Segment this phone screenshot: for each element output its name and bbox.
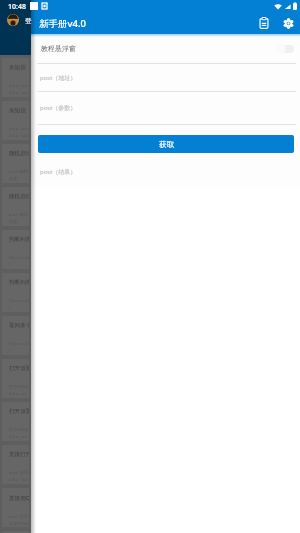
button[interactable]: 判断列表有无 <box>2 230 29 269</box>
button[interactable]: 返回多个值的 <box>2 316 29 355</box>
button[interactable]: 判断列表是否 <box>2 273 29 312</box>
button[interactable]: post（参数） <box>0 92 300 124</box>
staticText: 获取 <box>159 140 174 149</box>
staticText: 登 <box>25 17 31 25</box>
staticText: 新手册v4.0 <box>39 17 86 30</box>
button[interactable]: 直接用QQ浏览 <box>2 488 29 527</box>
button[interactable]: 发短信 <box>2 101 29 140</box>
button[interactable]: 随机启动应用 <box>2 187 29 226</box>
staticText: 判断列表有无 <box>9 236 29 243</box>
staticText: post（参数） <box>40 104 77 112</box>
staticText: 返回多个值的 <box>9 322 29 329</box>
staticText: a.w="随机启动" <box>9 212 29 218</box>
staticText: 发短信 <box>9 107 26 114</box>
staticText: 直接打开应用 <box>9 451 29 458</box>
staticText: post（结果） <box>40 168 77 176</box>
button[interactable]: 随机启动应用 <box>2 144 29 183</box>
staticText: 发短信 <box>9 64 26 71</box>
staticText: 打开设置页面 <box>9 365 29 372</box>
button[interactable]: 打开设置页面 <box>2 402 29 441</box>
staticText: a.w="随机启动" <box>9 169 29 175</box>
staticText: 10:48 <box>8 2 26 12</box>
staticText: post（地址） <box>40 74 77 82</box>
button[interactable]: 获取 <box>38 135 294 153</box>
button[interactable]: 打开设置页面 <box>2 359 29 398</box>
button[interactable]: 发短信 <box>2 58 29 97</box>
staticText: 教程悬浮窗 <box>41 44 76 53</box>
button[interactable]: Settings <box>277 12 299 34</box>
staticText: 直接用QQ浏览 <box>9 494 29 502</box>
staticText: 打开设置页面 <box>9 408 29 415</box>
staticText: 随机启动应用 <box>9 150 29 157</box>
button[interactable]: 教程悬浮窗 <box>0 34 300 63</box>
button[interactable]: 直接打开应用 <box>2 445 29 484</box>
button[interactable]: post（地址） <box>0 64 300 91</box>
button[interactable]: Clipboard <box>253 12 275 34</box>
staticText: 随机启动应用 <box>9 193 29 200</box>
staticText: 判断列表是否 <box>9 279 29 286</box>
